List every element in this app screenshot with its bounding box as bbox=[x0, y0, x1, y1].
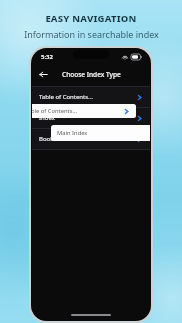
staticText: EASY NAVIGATION bbox=[45, 12, 137, 25]
button[interactable]: Table of Contents... bbox=[32, 104, 136, 118]
button[interactable]: Back bbox=[36, 67, 50, 81]
button[interactable]: Bookmarks bbox=[32, 129, 150, 149]
staticText: Table of Contents... bbox=[39, 93, 93, 101]
staticText: 5:32 bbox=[41, 53, 53, 61]
button[interactable]: Index bbox=[32, 108, 150, 128]
staticText: Choose Index Type bbox=[62, 70, 121, 79]
staticText: Main Index bbox=[57, 129, 88, 137]
staticText: Table of Contents... bbox=[32, 107, 78, 115]
button[interactable]: Main Index bbox=[51, 125, 150, 141]
button[interactable]: Table of Contents... bbox=[32, 87, 150, 107]
staticText: Information in searchable index bbox=[24, 28, 159, 40]
staticText: Bookmarks bbox=[39, 135, 71, 143]
staticText: Index bbox=[39, 114, 55, 122]
